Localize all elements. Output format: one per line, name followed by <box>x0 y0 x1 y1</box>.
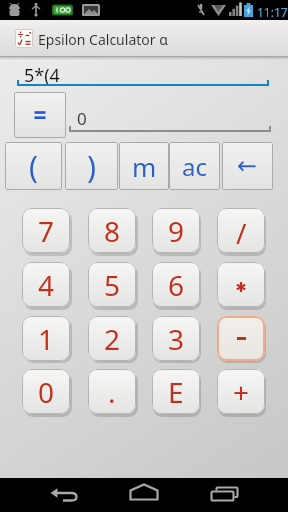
staticText: 2 <box>104 320 121 358</box>
staticText: m <box>132 149 157 184</box>
button[interactable]: 7 <box>22 208 70 253</box>
button[interactable]: 3 <box>152 316 200 361</box>
button[interactable]: 8 <box>88 208 136 253</box>
button[interactable]: 0 <box>22 369 70 414</box>
button[interactable]: ac <box>169 142 220 190</box>
button[interactable]: m <box>119 142 169 190</box>
staticText: ← <box>237 152 258 180</box>
button[interactable]: . <box>88 369 136 414</box>
staticText: 11:17 <box>257 4 288 20</box>
button[interactable] <box>217 316 265 361</box>
staticText: 7 <box>38 212 55 250</box>
button[interactable] <box>217 262 265 307</box>
staticText: 0 <box>77 107 87 130</box>
button[interactable]: 6 <box>152 262 200 307</box>
button[interactable]: E <box>152 369 200 414</box>
staticText: 8 <box>104 212 121 250</box>
staticText: 6 <box>168 266 185 304</box>
staticText: 5 <box>104 266 121 304</box>
staticText: ( <box>29 146 38 187</box>
staticText: . <box>108 373 116 411</box>
button[interactable]: / <box>217 208 265 253</box>
button[interactable]: 1 <box>22 316 70 361</box>
button[interactable] <box>116 478 172 512</box>
staticText: 0 <box>38 373 55 411</box>
button[interactable] <box>17 60 270 87</box>
staticText: 5*(4 <box>24 63 60 88</box>
button[interactable]: ) <box>65 142 118 190</box>
button[interactable]: + <box>217 369 265 414</box>
button[interactable]: 4 <box>22 262 70 307</box>
button[interactable]: 5 <box>88 262 136 307</box>
staticText: 9 <box>168 212 185 250</box>
staticText: + <box>233 373 250 411</box>
button[interactable] <box>192 478 248 512</box>
button[interactable]: ( <box>5 142 62 190</box>
staticText: Epsilon Calculator α <box>38 30 168 49</box>
staticText: / <box>236 214 247 252</box>
staticText: 3 <box>168 320 185 358</box>
staticText: 1 <box>38 320 55 358</box>
staticText: E <box>168 373 184 411</box>
button[interactable] <box>40 478 96 512</box>
button[interactable]: 9 <box>152 208 200 253</box>
staticText: 4 <box>38 266 55 304</box>
staticText: ac <box>182 150 207 183</box>
button[interactable]: 2 <box>88 316 136 361</box>
button[interactable]: ← <box>222 142 273 190</box>
button[interactable] <box>69 96 270 132</box>
button[interactable] <box>14 92 66 138</box>
staticText: ) <box>87 146 96 187</box>
